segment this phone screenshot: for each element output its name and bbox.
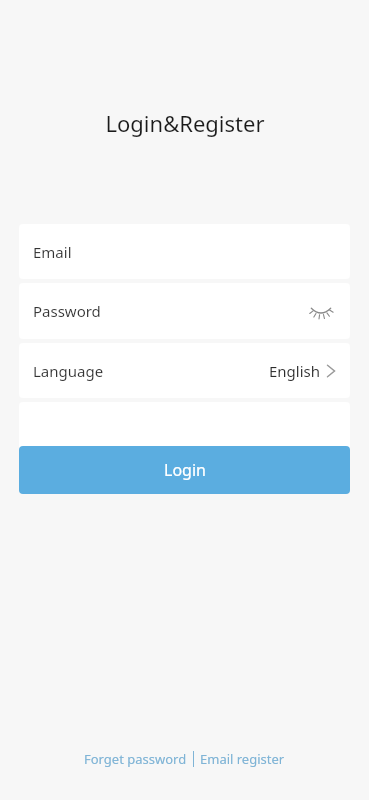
button[interactable]: Email	[19, 224, 350, 279]
staticText: English	[269, 361, 321, 381]
staticText: Email register	[200, 750, 285, 768]
staticText: Email	[33, 242, 72, 262]
button[interactable]: Password	[19, 283, 350, 339]
button[interactable]: Forget password	[78, 746, 193, 772]
staticText: Language	[33, 361, 269, 381]
staticText: Login&Register	[105, 108, 265, 138]
staticText: Password	[33, 301, 306, 321]
other: Select language	[326, 362, 336, 380]
button[interactable]: Login	[19, 446, 350, 494]
button[interactable]: Language	[19, 343, 350, 398]
staticText: Login	[164, 459, 206, 481]
button[interactable]: Show password	[306, 296, 336, 326]
button[interactable]: Email register	[194, 746, 291, 772]
button[interactable]	[19, 402, 350, 457]
staticText: Forget password	[84, 750, 187, 768]
